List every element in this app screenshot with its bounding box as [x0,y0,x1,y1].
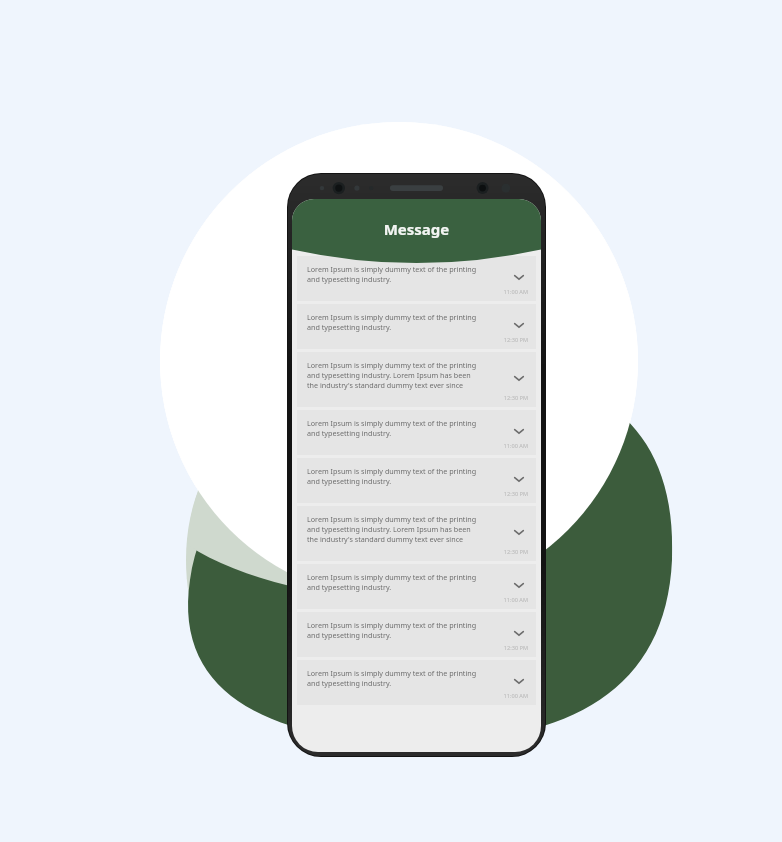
staticText: Lorem Ipsum is simply dummy text of the … [307,264,477,274]
staticText: Lorem Ipsum is simply dummy text of the … [307,620,477,630]
staticText: 12:30 PM [307,490,528,498]
staticText: 11:00 AM [307,288,528,296]
staticText: and typesetting industry. [307,630,392,640]
staticText: and typesetting industry. [307,274,392,284]
button[interactable]: Lorem Ipsum is simply dummy text of the … [297,612,536,657]
button[interactable]: Lorem Ipsum is simply dummy text of the … [297,410,536,455]
staticText: and typesetting industry. [307,476,392,486]
button[interactable]: Expand message [510,316,528,334]
staticText: Lorem Ipsum is simply dummy text of the … [307,418,477,428]
staticText: 12:30 PM [307,548,528,556]
staticText: and typesetting industry. [307,322,392,332]
staticText: Lorem Ipsum is simply dummy text of the … [307,514,477,524]
button[interactable]: Lorem Ipsum is simply dummy text of the … [297,256,536,301]
button[interactable]: Expand message [510,422,528,440]
staticText: and typesetting industry. [307,428,392,438]
staticText: 12:30 PM [307,394,528,402]
button[interactable]: Expand message [510,369,528,387]
staticText: the industry's standard dummy text ever … [307,380,464,390]
button[interactable]: Expand message [510,268,528,286]
staticText: Lorem Ipsum is simply dummy text of the … [307,466,477,476]
staticText: and typesetting industry. [307,582,392,592]
button[interactable]: Expand message [510,470,528,488]
button[interactable]: Expand message [510,672,528,690]
button[interactable]: Expand message [510,624,528,642]
staticText: 11:00 AM [307,596,528,604]
button[interactable]: Lorem Ipsum is simply dummy text of the … [297,564,536,609]
staticText: Lorem Ipsum is simply dummy text of the … [307,360,477,370]
button[interactable]: Expand message [510,576,528,594]
button[interactable]: Lorem Ipsum is simply dummy text of the … [297,304,536,349]
staticText: the industry's standard dummy text ever … [307,534,464,544]
staticText: 12:30 PM [307,336,528,344]
staticText: Lorem Ipsum is simply dummy text of the … [307,312,477,322]
button[interactable]: Lorem Ipsum is simply dummy text of the … [297,660,536,705]
staticText: Lorem Ipsum is simply dummy text of the … [307,572,477,582]
button[interactable]: Expand message [510,523,528,541]
staticText: 11:00 AM [307,442,528,450]
staticText: and typesetting industry. [307,678,392,688]
staticText: and typesetting industry. Lorem Ipsum ha… [307,370,471,380]
button[interactable]: Lorem Ipsum is simply dummy text of the … [297,352,536,407]
button[interactable]: Lorem Ipsum is simply dummy text of the … [297,506,536,561]
staticText: 12:30 PM [307,644,528,652]
staticText: and typesetting industry. Lorem Ipsum ha… [307,524,471,534]
button[interactable]: Lorem Ipsum is simply dummy text of the … [297,458,536,503]
staticText: Message [292,219,541,239]
staticText: Lorem Ipsum is simply dummy text of the … [307,668,477,678]
staticText: 11:00 AM [307,692,528,700]
